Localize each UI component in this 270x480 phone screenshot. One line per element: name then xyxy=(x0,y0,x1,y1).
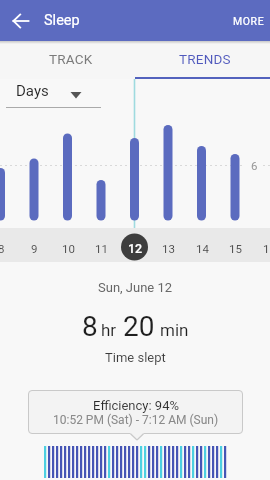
staticText: min xyxy=(160,320,189,340)
staticText: hr xyxy=(101,320,117,340)
staticText: 8 xyxy=(0,242,5,255)
staticText: 13 xyxy=(162,242,175,255)
staticText: 9 xyxy=(31,242,38,255)
button[interactable] xyxy=(28,390,243,434)
button[interactable]: 12 xyxy=(120,233,150,263)
button[interactable]: 14 xyxy=(187,233,217,263)
staticText: Efficiency: 94% xyxy=(93,398,179,413)
staticText: Time slept xyxy=(105,350,166,365)
staticText: 10 xyxy=(62,242,75,255)
button[interactable]: 16 xyxy=(254,233,270,263)
button[interactable]: TRENDS xyxy=(135,41,270,79)
staticText: 14 xyxy=(196,242,209,255)
staticText: 16 xyxy=(263,242,270,255)
staticText: 10:52 PM (Sat) - 7:12 AM (Sun) xyxy=(53,413,219,427)
button[interactable]: 9 xyxy=(19,233,49,263)
button[interactable]: MORE xyxy=(228,0,270,41)
button[interactable]: 15 xyxy=(220,233,250,263)
button[interactable]: 13 xyxy=(153,233,183,263)
button[interactable]: 10 xyxy=(53,233,83,263)
button[interactable]: 11 xyxy=(86,233,116,263)
staticText: TRENDS xyxy=(179,51,231,67)
button[interactable]: TRACK xyxy=(0,41,135,79)
staticText: MORE xyxy=(233,15,265,27)
staticText: Sun, June 12 xyxy=(98,280,173,295)
staticText: Sleep xyxy=(44,12,80,29)
staticText: 11 xyxy=(95,242,108,255)
button[interactable]: 8 xyxy=(0,233,16,263)
staticText: TRACK xyxy=(49,51,93,67)
staticText: Days xyxy=(16,82,49,100)
button[interactable]: Days xyxy=(6,80,102,108)
staticText: 8 xyxy=(82,310,98,343)
staticText: 6 xyxy=(251,159,258,172)
staticText: 12 xyxy=(128,241,143,256)
staticText: 20 xyxy=(123,310,155,343)
button[interactable] xyxy=(0,0,41,41)
staticText: 15 xyxy=(229,242,242,255)
